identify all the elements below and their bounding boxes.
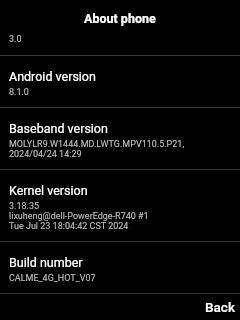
button[interactable]: Build number bbox=[0, 242, 240, 293]
staticText: CALME_4G_HOT_V07 bbox=[9, 273, 96, 284]
staticText: Build number bbox=[9, 255, 83, 270]
staticText: 8.1.0 bbox=[9, 87, 29, 98]
staticText: Baseband version bbox=[9, 121, 108, 136]
button[interactable]: Back bbox=[195, 294, 240, 320]
staticText: Kernel version bbox=[9, 183, 88, 198]
staticText: 3.0 bbox=[9, 34, 22, 45]
staticText: MOLYLR9.W1444.MD.LWTG.MPV110.5.P21, 2024… bbox=[9, 139, 185, 159]
button[interactable]: Android version bbox=[0, 56, 240, 107]
staticText: Android version bbox=[9, 69, 96, 84]
staticText: About phone bbox=[84, 11, 156, 26]
button[interactable]: Kernel version bbox=[0, 170, 240, 241]
staticText: Back bbox=[205, 299, 235, 313]
staticText: 3.18.35 lixuheng@dell-PowerEdge-R740 #1 … bbox=[9, 201, 149, 231]
button[interactable]: Baseband version bbox=[0, 108, 240, 169]
